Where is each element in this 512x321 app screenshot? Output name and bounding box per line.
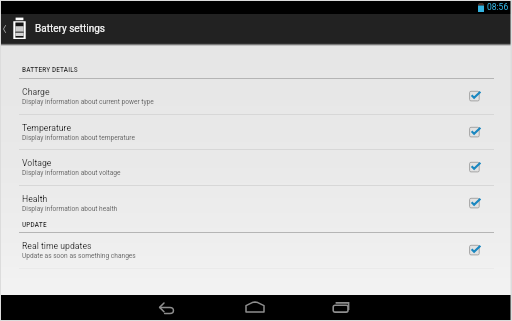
button[interactable]: Back: [148, 295, 192, 321]
button[interactable]: Health: [0, 186, 512, 221]
staticText: Battery settings: [35, 23, 105, 35]
staticText: Health: [22, 194, 48, 204]
button[interactable]: Recent apps: [320, 295, 364, 321]
button[interactable]: Home: [234, 295, 278, 321]
staticText: Voltage: [22, 158, 52, 168]
staticText: Display information about current power …: [22, 98, 154, 106]
button[interactable]: Toggle: [466, 242, 484, 260]
staticText: Update as soon as something changes: [22, 252, 136, 260]
staticText: UPDATE: [22, 221, 47, 229]
button[interactable]: Toggle: [466, 195, 484, 213]
button[interactable]: Temperature: [0, 115, 512, 150]
staticText: Temperature: [22, 123, 72, 133]
button[interactable]: Navigate up: [0, 14, 30, 43]
staticText: Display information about temperature: [22, 134, 135, 142]
staticText: Display information about voltage: [22, 169, 121, 177]
button[interactable]: Toggle: [466, 88, 484, 106]
button[interactable]: Voltage: [0, 150, 512, 185]
button[interactable]: Real time updates: [0, 233, 512, 268]
staticText: BATTERY DETAILS: [22, 66, 78, 74]
staticText: 08:56: [487, 2, 509, 12]
staticText: Charge: [22, 87, 50, 97]
button[interactable]: Toggle: [466, 124, 484, 142]
button[interactable]: Charge: [0, 79, 512, 114]
staticText: Real time updates: [22, 241, 92, 251]
staticText: Display information about health: [22, 205, 118, 213]
button[interactable]: Toggle: [466, 159, 484, 177]
